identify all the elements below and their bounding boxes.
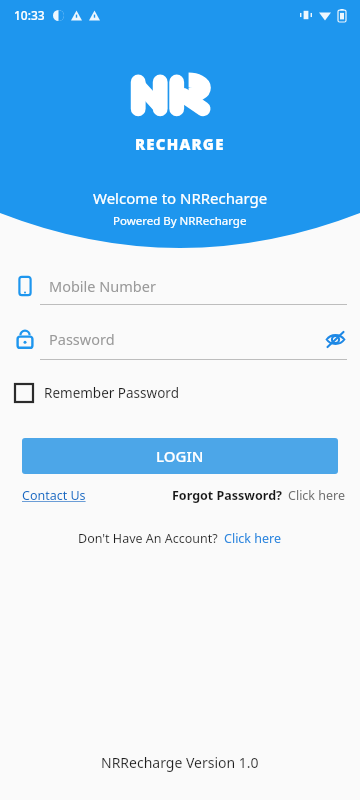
staticText: Welcome to NRRecharge: [93, 188, 268, 208]
other: Password: [15, 329, 35, 349]
staticText: Powered By NRRecharge: [113, 213, 247, 229]
staticText: NRRecharge Version 1.0: [101, 753, 259, 772]
staticText: Don't Have An Account?: [78, 530, 218, 547]
button[interactable]: Click here: [224, 530, 282, 547]
button[interactable]: Contact Us: [22, 487, 86, 504]
button[interactable]: Remember Password: [15, 384, 179, 402]
staticText: LOGIN: [156, 446, 204, 466]
staticText: Click here: [288, 487, 346, 504]
staticText: Contact Us: [22, 487, 86, 504]
staticText: 10:33: [14, 7, 45, 23]
button[interactable]: Forgot Password?: [172, 487, 346, 504]
button[interactable]: LOGIN: [22, 438, 338, 474]
other: Mobile number: [15, 276, 35, 296]
staticText: Click here: [224, 530, 282, 547]
staticText: Forgot Password?: [172, 487, 283, 504]
staticText: Password: [49, 329, 115, 349]
button[interactable]: Show password: [323, 327, 347, 351]
staticText: RECHARGE: [135, 134, 225, 154]
staticText: Remember Password: [44, 384, 179, 402]
staticText: Mobile Number: [49, 276, 156, 296]
